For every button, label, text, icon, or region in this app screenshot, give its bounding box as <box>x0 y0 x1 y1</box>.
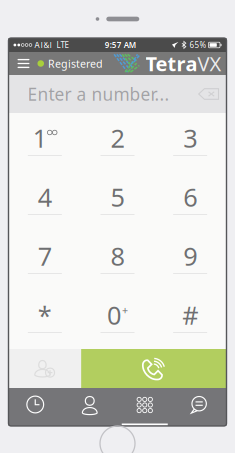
staticText: 0 <box>107 298 121 332</box>
staticText: 9:57 AM <box>105 40 136 50</box>
button[interactable]: Recents <box>8 388 63 426</box>
button[interactable]: 3 <box>154 113 226 172</box>
staticText: 9 <box>183 239 197 273</box>
staticText: Enter a number... <box>27 82 169 105</box>
button[interactable]: 4 <box>8 172 81 231</box>
staticText: LTE <box>52 40 68 50</box>
button[interactable]: 5 <box>81 172 154 231</box>
staticText: 7 <box>38 239 52 273</box>
staticText: VX <box>197 50 221 77</box>
button[interactable]: # <box>154 290 226 349</box>
button[interactable]: 9 <box>154 231 226 290</box>
button[interactable]: Menu <box>13 52 33 75</box>
button[interactable]: 1 <box>8 113 81 172</box>
staticText: Tetra <box>145 50 197 77</box>
button[interactable]: 0 <box>81 290 154 349</box>
button[interactable]: * <box>8 290 81 349</box>
button[interactable]: 8 <box>81 231 154 290</box>
staticText: 5 <box>110 180 124 214</box>
staticText: 3 <box>183 121 197 155</box>
button[interactable]: Add contact <box>8 349 81 388</box>
staticText: Registered <box>48 56 103 71</box>
staticText: * <box>38 298 52 332</box>
button[interactable]: 7 <box>8 231 81 290</box>
button[interactable]: 2 <box>81 113 154 172</box>
staticText: AT&T <box>34 40 52 50</box>
staticText: + <box>122 303 128 317</box>
staticText: 65% <box>189 40 206 50</box>
staticText: # <box>182 298 198 332</box>
button[interactable]: Delete <box>195 84 221 104</box>
button[interactable]: Call <box>81 349 226 388</box>
button[interactable]: 6 <box>154 172 226 231</box>
staticText: 8 <box>110 239 124 273</box>
staticText: 6 <box>183 180 197 214</box>
staticText: 4 <box>38 180 52 214</box>
button[interactable]: Contacts <box>63 388 117 426</box>
button[interactable]: Messages <box>172 388 226 426</box>
staticText: 1 <box>33 121 47 155</box>
button[interactable]: Keypad <box>117 388 172 426</box>
staticText: 2 <box>110 121 124 155</box>
